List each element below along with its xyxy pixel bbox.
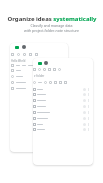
- staticText: ▾ folder: [34, 74, 45, 78]
- staticText: Hello World: [11, 59, 26, 63]
- staticText: Organize ideas systematically: [7, 15, 97, 23]
- staticText: Classify and manage data with project-fo…: [24, 23, 79, 33]
